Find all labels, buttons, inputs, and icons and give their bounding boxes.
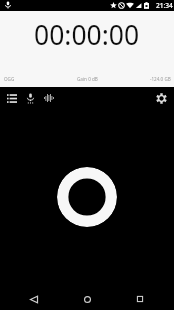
button[interactable]: Record	[57, 167, 117, 227]
staticText: Gain 0 dB	[77, 76, 98, 82]
button[interactable]: Recordings list	[2, 88, 22, 108]
button[interactable]: Waveform	[39, 88, 59, 108]
button[interactable]: Settings	[151, 88, 171, 108]
button[interactable]: Microphone source	[20, 88, 40, 108]
staticText: 00:00:00	[34, 17, 140, 53]
button[interactable]: Recent apps	[130, 289, 150, 309]
staticText: -124.0 GB	[150, 76, 171, 82]
button[interactable]: Home	[77, 289, 97, 309]
staticText: OGG	[4, 76, 15, 82]
staticText: 21:34	[156, 1, 173, 10]
button[interactable]: Back	[24, 289, 44, 309]
